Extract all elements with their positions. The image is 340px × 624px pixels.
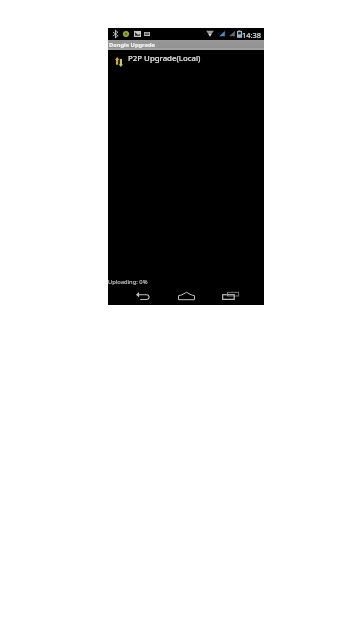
button[interactable]: Recent apps [219, 288, 241, 304]
button[interactable]: Home [175, 288, 197, 304]
staticText: Uploading: 0% [108, 278, 148, 286]
button[interactable]: P2P Upgrade(Local) [108, 50, 264, 70]
staticText: Dongle Upgrade [109, 41, 155, 49]
staticText: P2P Upgrade(Local) [128, 53, 201, 64]
button[interactable]: Back [132, 288, 154, 304]
staticText: 14:38 [242, 30, 261, 40]
